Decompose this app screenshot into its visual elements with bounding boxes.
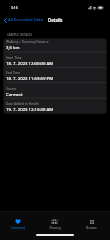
staticText: Start Time bbox=[6, 56, 22, 60]
staticText: Walking + Running Distance bbox=[6, 40, 49, 44]
button[interactable]: All Recorded Data bbox=[4, 17, 43, 23]
button[interactable]: Source bbox=[3, 83, 106, 99]
staticText: 18. 7. 2023 12:00:00 AM bbox=[6, 60, 54, 66]
button[interactable]: Sharing bbox=[36, 212, 73, 233]
staticText: Date Added to Health bbox=[6, 102, 39, 106]
other: Sharing bbox=[51, 219, 58, 224]
staticText: 3,6 km bbox=[6, 44, 20, 50]
button[interactable]: End Time bbox=[3, 67, 106, 82]
button[interactable]: Start Time bbox=[3, 52, 106, 67]
staticText: Sharing bbox=[49, 226, 61, 230]
button[interactable]: Summary bbox=[0, 212, 36, 233]
other: Browse bbox=[90, 220, 94, 224]
staticText: 18. 7. 2023 11:59:59 PM bbox=[6, 75, 54, 81]
staticText: All Recorded Data bbox=[8, 17, 43, 23]
staticText: Browse bbox=[86, 226, 97, 230]
staticText: Connect bbox=[6, 91, 23, 97]
button[interactable]: Browse bbox=[73, 212, 110, 233]
staticText: Source bbox=[6, 87, 17, 91]
staticText: End Time bbox=[6, 71, 21, 75]
button[interactable]: Walking + Running Distance bbox=[3, 38, 106, 52]
staticText: SAMPLE DETAILS bbox=[7, 33, 33, 37]
other: Summary bbox=[15, 219, 21, 224]
staticText: 3:16 bbox=[11, 5, 18, 9]
staticText: Summary bbox=[11, 226, 25, 230]
button[interactable]: Date Added to Health bbox=[3, 98, 106, 114]
staticText: 19. 7. 2023 12:10:30 AM bbox=[6, 106, 54, 112]
staticText: Details bbox=[48, 17, 63, 23]
